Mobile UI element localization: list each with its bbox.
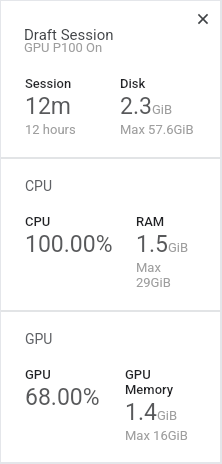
staticText: CPU bbox=[25, 178, 53, 194]
staticText: CPU bbox=[25, 214, 51, 229]
button[interactable]: CPU bbox=[25, 214, 115, 258]
staticText: RAM bbox=[136, 214, 165, 229]
staticText: 2.3GiB bbox=[120, 93, 173, 120]
staticText: GPU bbox=[25, 367, 51, 382]
button[interactable]: GPU bbox=[25, 367, 101, 411]
staticText: 12m bbox=[25, 93, 72, 120]
staticText: Memory bbox=[125, 382, 174, 397]
staticText: 100.00% bbox=[25, 231, 113, 258]
button[interactable]: Session bbox=[25, 76, 96, 137]
staticText: GPU P100 On bbox=[24, 40, 103, 55]
staticText: Session bbox=[25, 76, 72, 91]
staticText: Max bbox=[136, 260, 161, 275]
button[interactable]: Close session panel bbox=[192, 8, 214, 30]
staticText: Max 16GiB bbox=[125, 428, 188, 443]
button[interactable]: GPU bbox=[125, 367, 188, 443]
staticText: Disk bbox=[120, 76, 146, 91]
staticText: GPU bbox=[125, 367, 151, 382]
staticText: Max 57.6GiB bbox=[120, 122, 194, 137]
button[interactable]: Disk bbox=[120, 76, 194, 137]
staticText: Draft Session bbox=[24, 26, 114, 44]
staticText: 12 hours bbox=[25, 122, 76, 137]
staticText: 68.00% bbox=[25, 384, 100, 411]
staticText: 29GiB bbox=[136, 275, 171, 290]
staticText: 1.4GiB bbox=[125, 399, 178, 426]
staticText: 1.5GiB bbox=[136, 231, 189, 258]
staticText: GPU bbox=[25, 331, 53, 347]
button[interactable]: RAM bbox=[136, 214, 189, 290]
